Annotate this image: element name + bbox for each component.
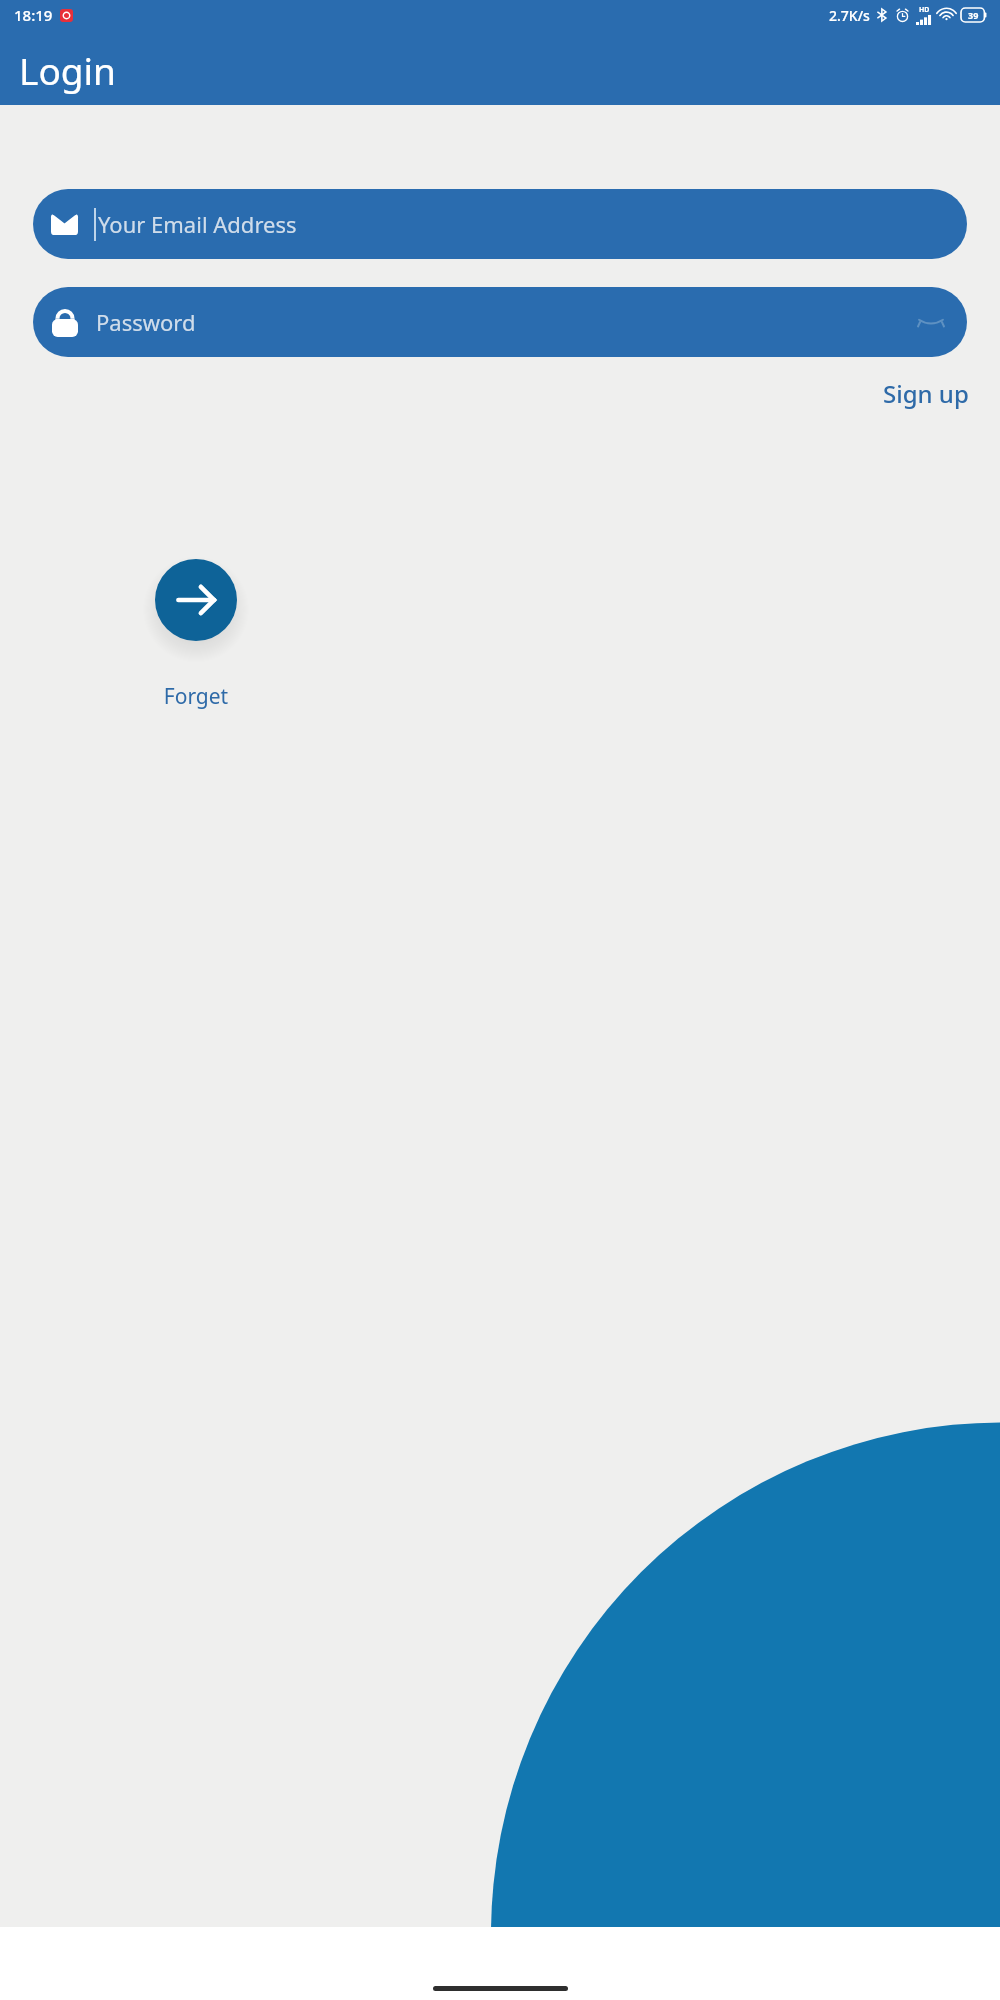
staticText: Login xyxy=(19,45,116,95)
button[interactable]: Password xyxy=(33,287,967,357)
button[interactable]: Sign up xyxy=(883,377,969,410)
staticText: Forget Password xyxy=(124,682,268,716)
staticText: HD xyxy=(919,5,930,15)
staticText: Sign up xyxy=(883,377,969,410)
staticText: Your Email Address xyxy=(98,209,297,239)
button[interactable]: Show password xyxy=(909,300,953,344)
button[interactable]: Submit xyxy=(155,559,237,641)
button[interactable]: Your Email Address xyxy=(33,189,967,259)
staticText: 18:19 xyxy=(14,5,53,25)
staticText: Password xyxy=(96,307,196,337)
staticText: 39 xyxy=(968,9,979,21)
staticText: 2.7K/s xyxy=(829,6,870,25)
button[interactable]: Forget Password xyxy=(124,682,268,716)
